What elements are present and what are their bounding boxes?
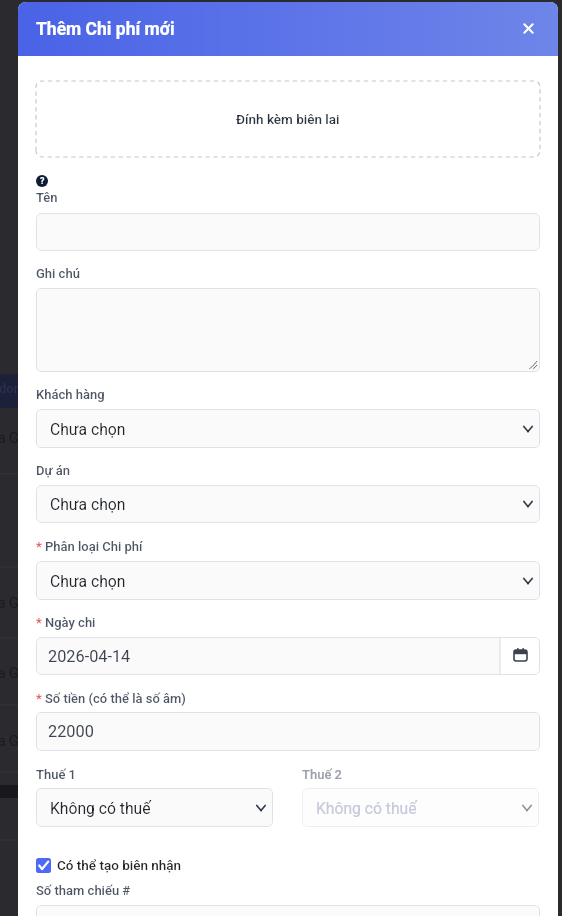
button[interactable]: Help <box>36 175 48 187</box>
staticText: Thêm Chi phí mới <box>36 19 175 40</box>
button[interactable]: 2026-04-14 <box>36 637 540 675</box>
staticText: Số tham chiếu # <box>36 883 131 898</box>
staticText: Ngày chi <box>45 615 96 630</box>
staticText: Tên <box>36 190 58 205</box>
button[interactable] <box>36 905 540 916</box>
button[interactable]: Pick date <box>500 637 540 675</box>
button[interactable] <box>36 288 540 372</box>
staticText: Khách hàng <box>36 387 105 402</box>
staticText: Đính kèm biên lai <box>236 111 340 127</box>
staticText: Có thể tạo biên nhận <box>57 857 182 873</box>
button[interactable]: Không có thuế <box>36 788 273 827</box>
button[interactable]: Có thể tạo biên nhận <box>36 857 182 873</box>
staticText: a G <box>0 595 19 611</box>
staticText: a G <box>0 665 19 681</box>
button[interactable]: Chưa chọn <box>36 409 540 448</box>
button[interactable]: 22000 <box>36 712 540 751</box>
button[interactable] <box>36 213 540 251</box>
staticText: Ghi chú <box>36 266 80 281</box>
staticText: Thuế 1 <box>36 767 76 782</box>
staticText: ? <box>40 176 45 187</box>
staticText: Chưa chọn <box>50 420 126 438</box>
staticText: Số tiền (có thể là số âm) <box>45 691 186 706</box>
button[interactable]: Không có thuế <box>302 788 539 827</box>
staticText: Chưa chọn <box>50 495 126 513</box>
staticText: * <box>36 539 45 554</box>
staticText: 2026-04-14 <box>48 647 131 666</box>
staticText: Thuế 2 <box>302 767 342 782</box>
staticText: * <box>36 691 45 706</box>
button[interactable]: Chưa chọn <box>36 561 540 600</box>
button[interactable]: Chưa chọn <box>36 485 540 523</box>
staticText: a G <box>0 430 19 446</box>
staticText: a G <box>0 733 19 749</box>
staticText: dor <box>0 381 19 396</box>
staticText: * <box>36 615 45 630</box>
button[interactable]: Đính kèm biên lai <box>36 81 540 157</box>
staticText: Không có thuế <box>316 799 417 817</box>
staticText: Phân loại Chi phí <box>45 539 143 554</box>
staticText: Không có thuế <box>50 799 151 817</box>
staticText: Dự án <box>36 463 70 478</box>
staticText: 22000 <box>48 722 94 741</box>
staticText: Chưa chọn <box>50 572 126 590</box>
button[interactable]: Close <box>513 13 543 43</box>
